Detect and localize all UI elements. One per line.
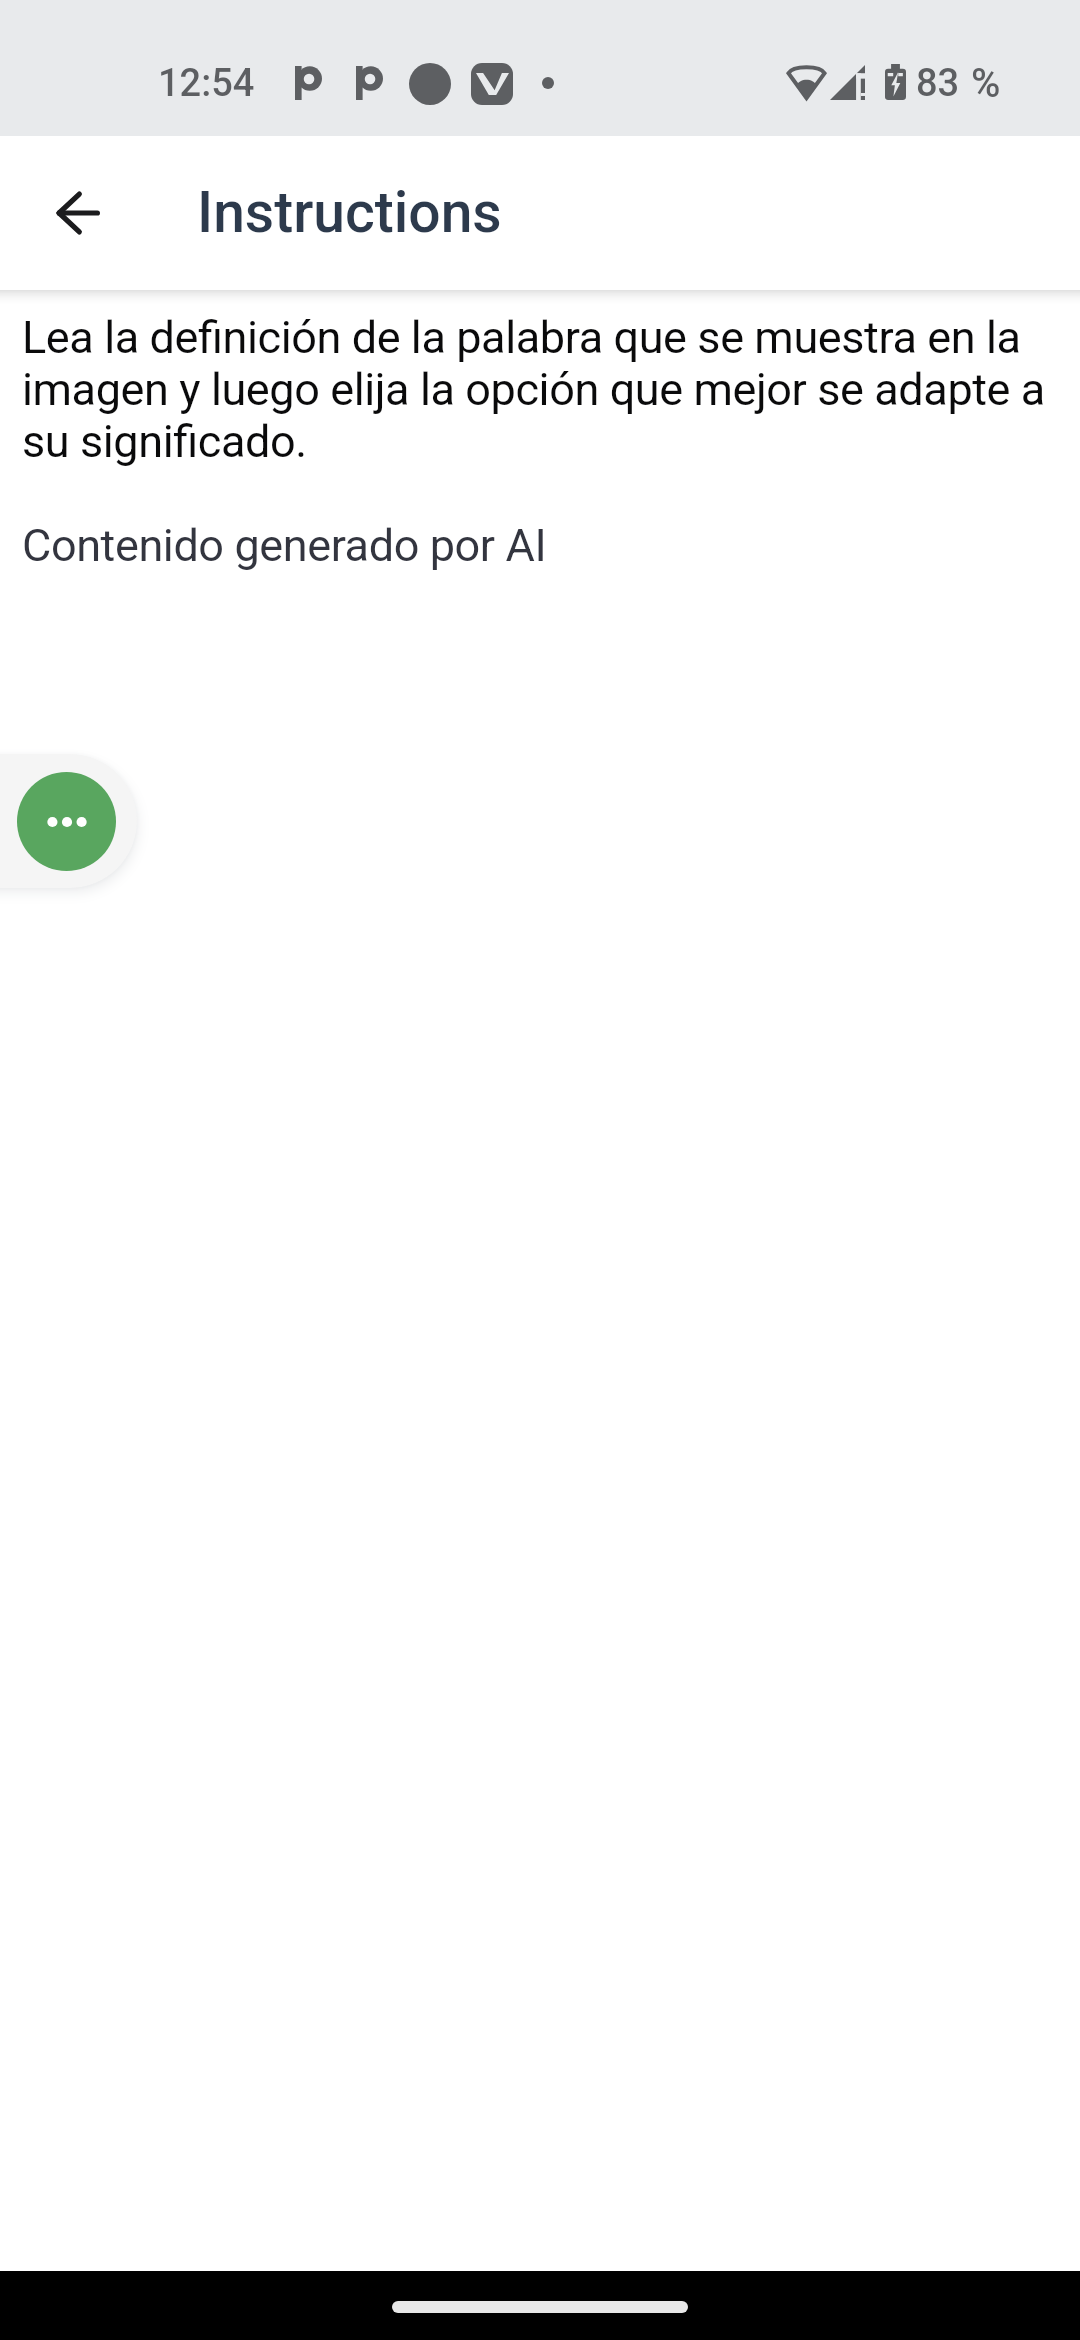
button[interactable]: More options [17, 772, 116, 871]
staticText: 83 [916, 61, 960, 106]
staticText: % [971, 60, 1001, 107]
button[interactable]: Back [34, 169, 122, 257]
staticText: Instructions [197, 179, 502, 246]
staticText: Lea la definición de la palabra que se m… [22, 312, 1052, 572]
staticText: 12:54 [158, 61, 255, 106]
